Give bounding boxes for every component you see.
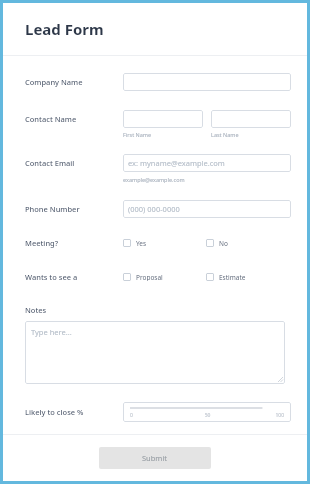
staticText: Company Name [25, 77, 83, 87]
button[interactable]: No [206, 237, 228, 249]
staticText: Lead Form [25, 19, 104, 39]
staticText: Contact Email [25, 158, 75, 168]
staticText: Proposal [136, 273, 163, 281]
button[interactable]: ex: myname@example.com [123, 154, 291, 172]
button[interactable]: 0 [123, 402, 291, 422]
button[interactable]: Type here... [25, 321, 285, 384]
staticText: ex: myname@example.com [128, 158, 225, 168]
staticText: Type here... [31, 327, 72, 337]
staticText: example@example.com [123, 176, 185, 183]
staticText: 50 [182, 412, 233, 419]
staticText: 0 [130, 412, 182, 419]
button[interactable]: Estimate [206, 271, 246, 283]
staticText: 100 [233, 412, 284, 419]
staticText: Contact Name [25, 114, 77, 124]
staticText: Estimate [219, 273, 246, 281]
staticText: Phone Number [25, 204, 80, 214]
staticText: First Name [123, 131, 152, 138]
button[interactable]: (000) 000-0000 [123, 200, 291, 218]
staticText: Meeting? [25, 238, 59, 248]
staticText: Yes [136, 239, 147, 247]
button[interactable]: Proposal [123, 271, 163, 283]
button[interactable] [123, 110, 203, 128]
staticText: Likely to close % [25, 407, 84, 417]
staticText: Last Name [211, 131, 239, 138]
button[interactable]: Submit [99, 447, 211, 469]
staticText: Wants to see a [25, 272, 78, 282]
button[interactable]: Yes [123, 237, 147, 249]
staticText: (000) 000-0000 [128, 204, 180, 214]
button[interactable] [211, 110, 291, 128]
staticText: Submit [142, 453, 168, 463]
button[interactable] [123, 73, 291, 91]
staticText: Notes [25, 305, 47, 315]
staticText: No [219, 239, 228, 247]
